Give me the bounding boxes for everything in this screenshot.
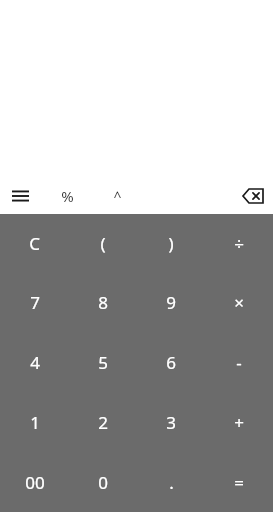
button[interactable]: 00 [0, 452, 69, 512]
staticText: × [234, 291, 244, 314]
button[interactable]: 1 [0, 392, 69, 452]
staticText: ÷ [234, 232, 244, 255]
staticText: 5 [98, 351, 108, 374]
staticText: 4 [30, 351, 40, 374]
staticText: 8 [98, 291, 108, 314]
staticText: - [236, 351, 242, 374]
button[interactable]: 9 [137, 273, 205, 332]
button[interactable]: 2 [69, 392, 137, 452]
button[interactable]: 0 [69, 452, 137, 512]
button[interactable]: ^ [101, 180, 133, 212]
staticText: 7 [30, 291, 40, 314]
staticText: C [29, 232, 40, 255]
staticText: % [61, 186, 74, 206]
button[interactable]: + [205, 392, 273, 452]
button[interactable]: 8 [69, 273, 137, 332]
staticText: + [234, 411, 244, 434]
button[interactable]: = [205, 452, 273, 512]
button[interactable]: ) [137, 214, 205, 273]
staticText: 1 [30, 411, 40, 434]
button[interactable]: Menu [4, 180, 36, 212]
staticText: 00 [25, 471, 45, 494]
staticText: 6 [166, 351, 176, 374]
button[interactable]: . [137, 452, 205, 512]
staticText: 2 [98, 411, 108, 434]
staticText: ^ [113, 187, 122, 206]
button[interactable]: 4 [0, 332, 69, 392]
staticText: 0 [98, 471, 108, 494]
staticText: = [234, 471, 244, 494]
button[interactable]: × [205, 273, 273, 332]
button[interactable]: - [205, 332, 273, 392]
button[interactable]: ÷ [205, 214, 273, 273]
button[interactable]: Backspace [237, 180, 269, 212]
button[interactable]: C [0, 214, 69, 273]
staticText: . [169, 471, 174, 494]
button[interactable]: 7 [0, 273, 69, 332]
button[interactable]: ( [69, 214, 137, 273]
button[interactable]: % [51, 180, 83, 212]
button[interactable]: 5 [69, 332, 137, 392]
staticText: ( [100, 232, 106, 255]
staticText: 9 [166, 291, 176, 314]
staticText: 3 [166, 411, 176, 434]
button[interactable]: 3 [137, 392, 205, 452]
button[interactable]: 6 [137, 332, 205, 392]
staticText: ) [168, 232, 174, 255]
